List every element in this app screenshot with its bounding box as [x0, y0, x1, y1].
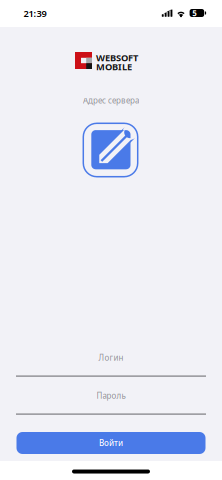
- staticText: Пароль: [96, 390, 125, 401]
- staticText: 21:39: [23, 7, 46, 19]
- button[interactable]: Адрес сервера: [82, 122, 138, 177]
- staticText: WEBSOFT: [96, 51, 138, 64]
- staticText: Логин: [98, 352, 123, 363]
- staticText: 5: [192, 8, 197, 18]
- staticText: Войти: [99, 438, 123, 448]
- staticText: Адрес сервера: [83, 95, 139, 106]
- button[interactable]: Пароль: [16, 386, 206, 418]
- button[interactable]: Логин: [16, 348, 206, 380]
- button[interactable]: Войти: [16, 432, 205, 454]
- staticText: MOBILE: [96, 60, 132, 73]
